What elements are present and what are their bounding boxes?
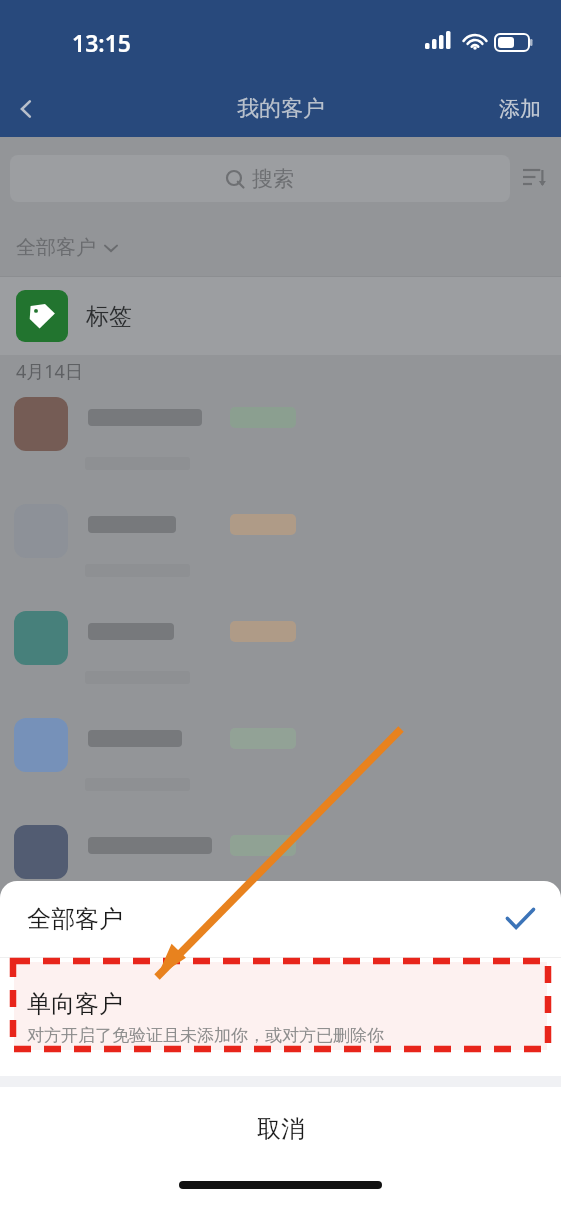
staticText: 全部客户	[16, 235, 96, 260]
button[interactable]: 全部客户	[0, 219, 561, 276]
button[interactable]: Sort	[513, 157, 555, 199]
staticText: 添加	[499, 96, 541, 122]
button[interactable]: 取消	[0, 1087, 561, 1171]
staticText: 全部客户	[27, 904, 123, 934]
staticText: 对方开启了免验证且未添加你，或对方已删除你	[27, 1025, 384, 1046]
staticText: 单向客户	[27, 989, 123, 1019]
staticText: 我的客户	[237, 95, 325, 123]
button[interactable]: 标签	[0, 277, 561, 355]
button[interactable]: 全部客户	[0, 881, 561, 957]
button[interactable]: 搜索	[10, 155, 510, 202]
staticText: 13:15	[72, 27, 131, 58]
button[interactable]: 添加	[489, 88, 551, 130]
staticText: 搜索	[252, 166, 294, 192]
button[interactable]: Back	[0, 83, 52, 135]
staticText: 标签	[86, 302, 132, 331]
staticText: 取消	[257, 1114, 305, 1144]
button[interactable]: 单向客户	[0, 958, 561, 1076]
staticText: 4月14日	[16, 359, 83, 384]
